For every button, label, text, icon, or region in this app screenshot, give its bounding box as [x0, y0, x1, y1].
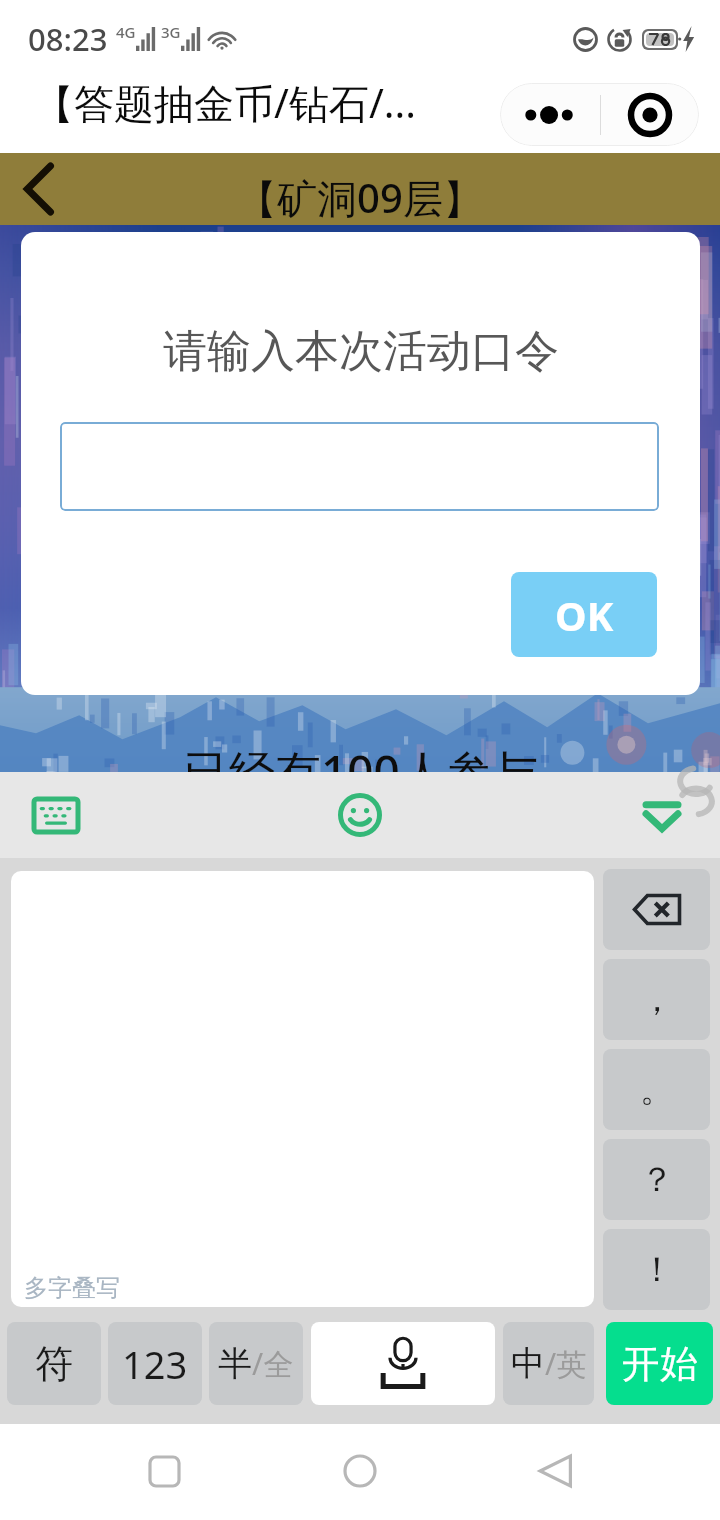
button[interactable]: ， — [603, 959, 710, 1040]
button[interactable]: Back — [0, 153, 80, 225]
staticText: ， — [640, 978, 674, 1021]
button[interactable]: 符 — [7, 1322, 101, 1405]
staticText: 多字叠写 — [24, 1273, 120, 1303]
staticText: 已经有100人参与 — [183, 740, 538, 772]
staticText: 请输入本次活动口令 — [163, 324, 559, 379]
button[interactable]: 开始 — [606, 1322, 713, 1405]
button[interactable]: 半 — [209, 1322, 303, 1405]
staticText: /全 — [252, 1343, 294, 1384]
staticText: ！ — [640, 1248, 674, 1291]
button[interactable]: OK — [511, 572, 657, 657]
button[interactable]: Voice input / Space — [311, 1322, 495, 1405]
button[interactable]: Recents — [114, 1433, 214, 1509]
button[interactable]: Hide keyboard — [622, 775, 702, 855]
button[interactable]: 123 — [108, 1322, 202, 1405]
staticText: 。 — [640, 1068, 674, 1111]
staticText: OK — [555, 588, 614, 642]
staticText: 【矿洞09层】 — [237, 170, 483, 225]
button[interactable]: Emoji — [320, 775, 400, 855]
button[interactable]: Backspace — [603, 869, 710, 950]
button[interactable]: 多字叠写 — [11, 871, 594, 1307]
staticText: 【答题抽金币/钻石/... — [34, 75, 416, 130]
staticText: 3G — [161, 22, 181, 42]
staticText: 开始 — [622, 1340, 698, 1388]
button[interactable]: Keyboard mode — [16, 775, 96, 855]
button[interactable] — [60, 422, 659, 511]
button[interactable]: Home — [310, 1433, 410, 1509]
staticText: 半 — [218, 1342, 252, 1385]
button[interactable]: 。 — [603, 1049, 710, 1130]
staticText: 123 — [122, 1338, 188, 1390]
staticText: 4G — [116, 22, 136, 42]
button[interactable]: More — [500, 83, 600, 146]
staticText: 08:23 — [28, 18, 108, 60]
button[interactable]: 中 — [503, 1322, 594, 1405]
staticText: ？ — [640, 1158, 674, 1201]
staticText: 中 — [511, 1342, 545, 1385]
staticText: 符 — [35, 1340, 73, 1388]
button[interactable]: ？ — [603, 1139, 710, 1220]
staticText: /英 — [545, 1343, 587, 1384]
button[interactable]: ！ — [603, 1229, 710, 1310]
button[interactable]: Close — [601, 83, 699, 146]
button[interactable]: Back — [506, 1433, 606, 1509]
